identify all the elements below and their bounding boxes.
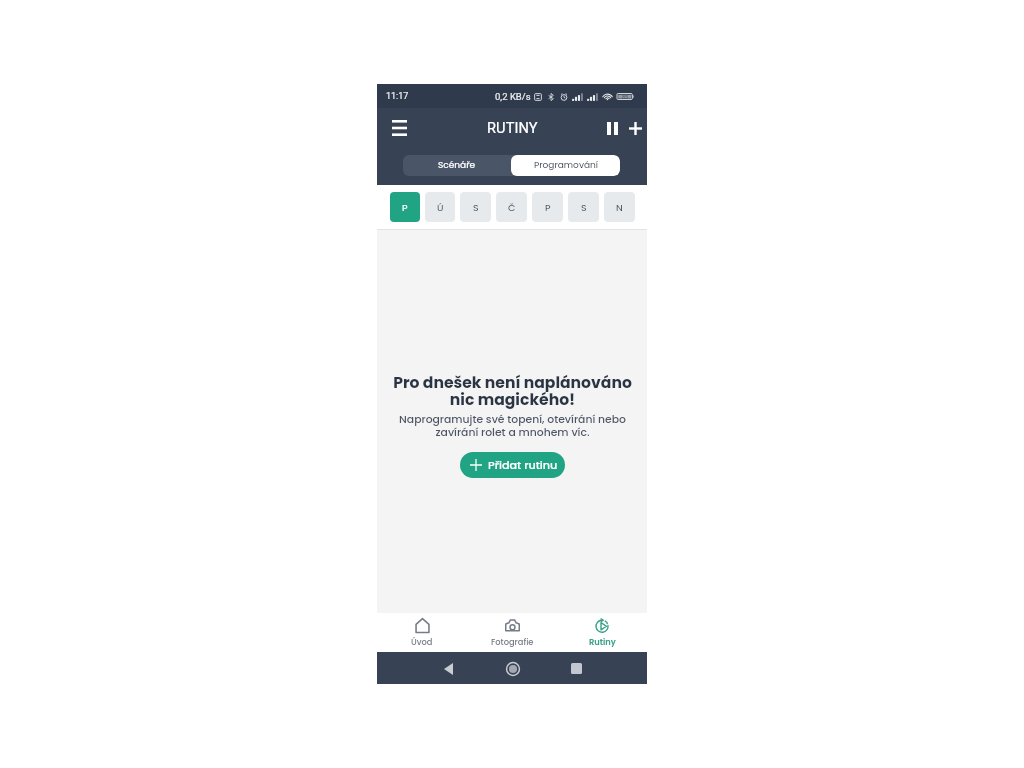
button[interactable]: Pause — [601, 117, 623, 139]
button[interactable]: Rutiny — [557, 613, 647, 652]
button[interactable]: Back — [437, 657, 460, 680]
staticText: P — [402, 201, 408, 214]
staticText: RUTINY — [487, 119, 538, 136]
staticText: Č — [508, 201, 516, 214]
staticText: Úvod — [411, 636, 433, 648]
button[interactable]: Home — [501, 657, 524, 680]
staticText: S — [581, 201, 587, 214]
button[interactable]: S — [568, 192, 599, 222]
button[interactable]: N — [604, 192, 635, 222]
staticText: 11:17 — [386, 91, 409, 102]
button[interactable]: Přidat rutinu — [460, 452, 565, 478]
staticText: Scénáře — [438, 159, 476, 172]
staticText: Naprogramujte své topení, otevírání nebo… — [399, 412, 626, 440]
staticText: Fotografie — [491, 636, 534, 648]
staticText: Rutiny — [589, 636, 616, 648]
button[interactable]: Add — [624, 117, 646, 139]
button[interactable]: P — [390, 192, 420, 222]
button[interactable]: Recents — [565, 657, 588, 680]
staticText: Přidat rutinu — [488, 457, 558, 473]
staticText: N — [616, 201, 623, 214]
staticText: 85 — [622, 94, 629, 100]
button[interactable]: Úvod — [377, 613, 467, 652]
staticText: Programování — [534, 159, 598, 172]
staticText: Ú — [437, 201, 444, 214]
button[interactable]: S — [460, 192, 491, 222]
button[interactable]: Fotografie — [467, 613, 557, 652]
staticText: 0,2 KB/s — [495, 91, 531, 102]
staticText: Pro dnešek není naplánováno nic magickéh… — [393, 372, 632, 411]
staticText: P — [545, 201, 551, 214]
button[interactable]: Ú — [425, 192, 455, 222]
staticText: S — [473, 201, 479, 214]
button[interactable]: Menu — [388, 117, 410, 139]
button[interactable]: Programování — [511, 155, 620, 176]
button[interactable]: Scénáře — [403, 155, 511, 176]
button[interactable]: Č — [496, 192, 527, 222]
button[interactable]: P — [532, 192, 563, 222]
